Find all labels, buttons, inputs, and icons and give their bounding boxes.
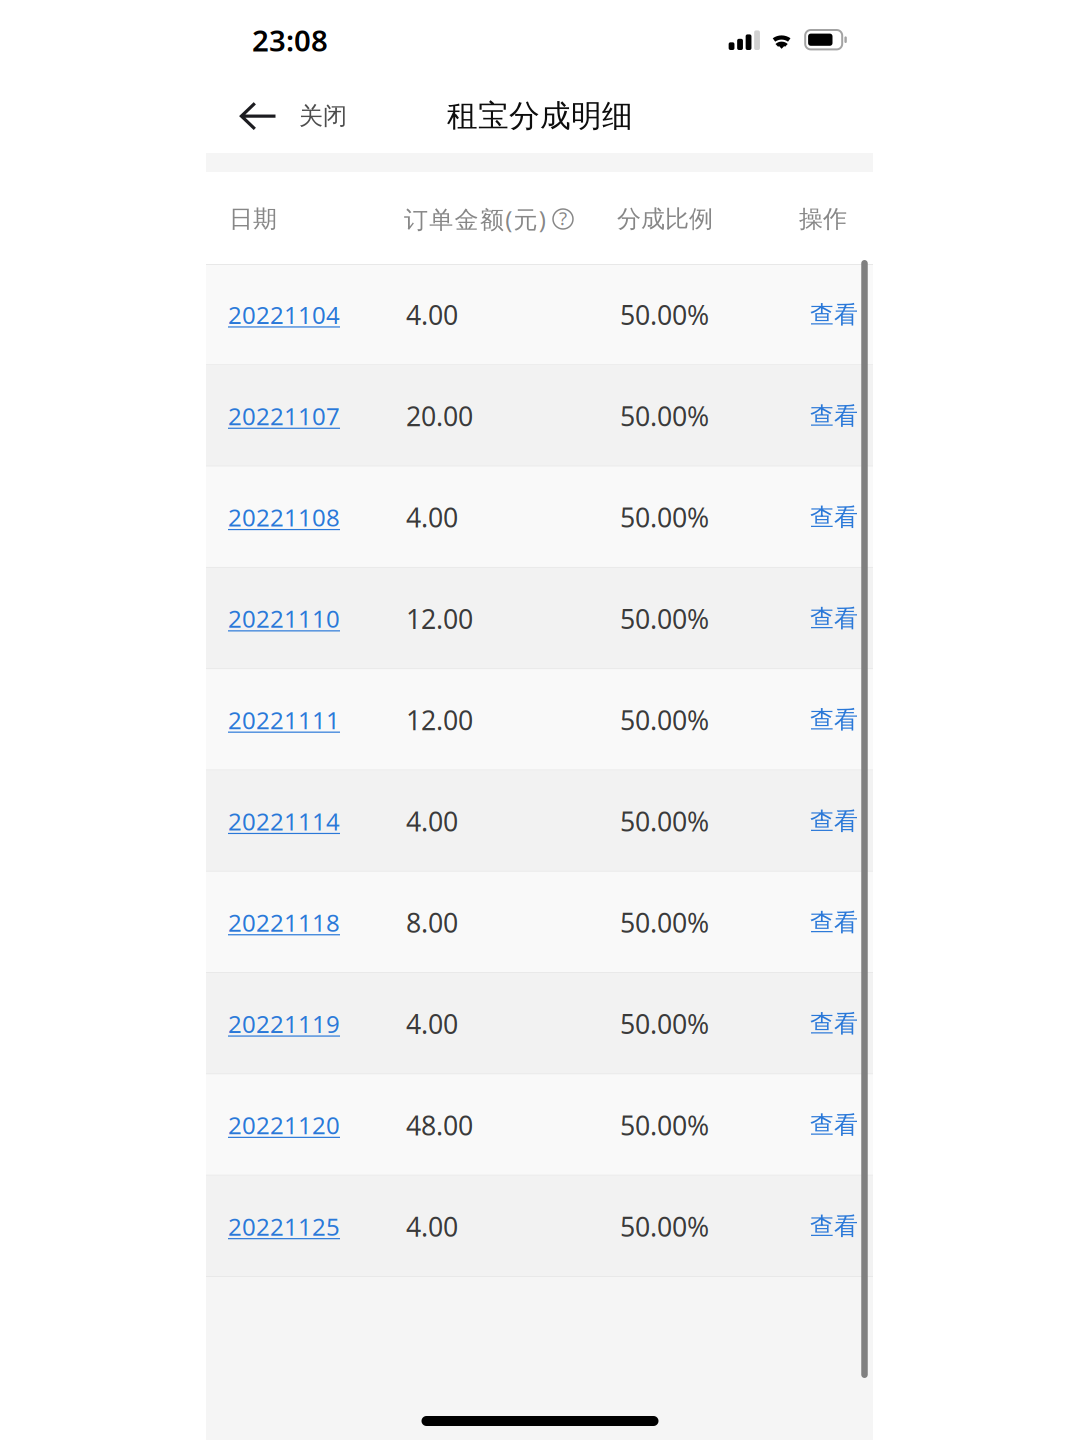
staticText: 48.00	[406, 1107, 473, 1143]
staticText: 4.00	[406, 297, 458, 332]
staticText: 查看	[810, 908, 858, 937]
staticText: 查看	[810, 401, 858, 431]
button[interactable]: 20221107	[222, 382, 346, 450]
staticText: 20221108	[228, 501, 340, 533]
staticText: 8.00	[406, 905, 458, 940]
staticText: 20221120	[228, 1109, 340, 1141]
staticText: 20221125	[228, 1210, 340, 1242]
staticText: 50.00%	[620, 803, 709, 839]
staticText: 订单金额(元)	[404, 203, 546, 235]
button[interactable]: 20221119	[222, 990, 346, 1058]
staticText: 20221104	[228, 299, 340, 331]
staticText: 4.00	[406, 1006, 458, 1041]
staticText: 50.00%	[620, 1006, 709, 1041]
staticText: 查看	[810, 806, 858, 836]
button[interactable]: 查看	[800, 586, 868, 651]
staticText: 50.00%	[620, 702, 709, 737]
staticText: 50.00%	[620, 905, 709, 940]
staticText: 4.00	[406, 803, 458, 839]
button[interactable]: 20221110	[222, 585, 346, 652]
staticText: 50.00%	[620, 1209, 709, 1244]
staticText: 20221110	[228, 603, 340, 634]
staticText: 50.00%	[620, 499, 709, 535]
staticText: 50.00%	[620, 1107, 709, 1143]
staticText: 关闭	[299, 101, 347, 131]
staticText: 查看	[810, 502, 858, 532]
staticText: 12.00	[406, 601, 473, 636]
staticText: 查看	[810, 300, 858, 329]
staticText: 20221119	[228, 1008, 340, 1040]
staticText: 20.00	[406, 398, 473, 434]
staticText: 日期	[229, 204, 277, 234]
button[interactable]: 20221114	[222, 787, 346, 855]
staticText: 50.00%	[620, 398, 709, 434]
staticText: 操作	[799, 204, 847, 234]
button[interactable]: 20221108	[222, 483, 346, 551]
button[interactable]: 查看	[800, 1092, 868, 1158]
staticText: 20221107	[228, 400, 340, 432]
button[interactable]: 查看	[800, 1194, 868, 1259]
staticText: 分成比例	[617, 204, 713, 234]
button[interactable]: 20221120	[222, 1091, 346, 1159]
staticText: ?	[559, 205, 567, 230]
button[interactable]: 查看	[800, 282, 868, 347]
button[interactable]: 查看	[800, 687, 868, 753]
staticText: 20221114	[228, 805, 340, 837]
staticText: 查看	[810, 1009, 858, 1038]
staticText: 4.00	[406, 499, 458, 535]
button[interactable]: 查看	[800, 890, 868, 955]
staticText: 查看	[810, 604, 858, 633]
staticText: 20221118	[228, 906, 340, 938]
staticText: 租宝分成明细	[447, 97, 633, 135]
button[interactable]: 查看	[800, 788, 868, 854]
staticText: 23:08	[252, 20, 328, 59]
staticText: 20221111	[228, 704, 340, 736]
staticText: 12.00	[406, 702, 473, 737]
button[interactable]: 20221125	[222, 1192, 346, 1260]
button[interactable]: 查看	[800, 991, 868, 1056]
staticText: 50.00%	[620, 601, 709, 636]
staticText: 4.00	[406, 1209, 458, 1244]
button[interactable]: 查看	[800, 484, 868, 550]
button[interactable]: 20221111	[222, 686, 346, 754]
button[interactable]: 查看	[800, 383, 868, 449]
button[interactable]: 20221118	[222, 888, 346, 956]
button[interactable]: 20221104	[222, 281, 346, 349]
staticText: 查看	[810, 705, 858, 735]
staticText: 查看	[810, 1212, 858, 1241]
button[interactable]: Close	[225, 81, 361, 151]
staticText: 50.00%	[620, 297, 709, 332]
staticText: 查看	[810, 1110, 858, 1140]
